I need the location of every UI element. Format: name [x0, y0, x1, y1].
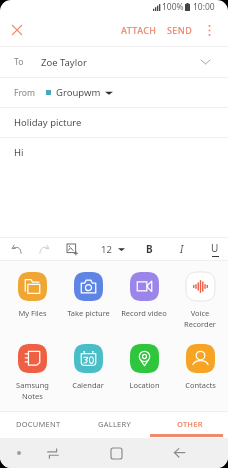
- staticText: Voice Recorder: [184, 308, 216, 329]
- staticText: Samsung Notes: [16, 380, 49, 401]
- staticText: Location: [129, 380, 160, 390]
- button[interactable]: OTHER: [152, 412, 228, 438]
- button[interactable]: Close: [6, 19, 28, 41]
- button[interactable]: Home: [85, 438, 148, 468]
- button[interactable]: More options: [198, 17, 220, 43]
- button[interactable]: To: [0, 47, 228, 77]
- button[interactable]: ATTACH: [116, 18, 162, 42]
- button[interactable]: I: [170, 239, 194, 259]
- button[interactable]: DOCUMENT: [0, 412, 76, 438]
- staticText: Hi: [14, 146, 24, 159]
- staticText: My Files: [18, 308, 47, 318]
- staticText: DOCUMENT: [16, 419, 61, 429]
- button[interactable]: SEND: [162, 18, 198, 42]
- staticText: Record video: [121, 308, 167, 318]
- button[interactable]: Take picture: [60, 272, 116, 318]
- staticText: From: [14, 87, 35, 99]
- button[interactable]: Holiday picture: [0, 108, 228, 137]
- button[interactable]: Redo: [35, 240, 53, 258]
- staticText: B: [146, 242, 153, 256]
- button[interactable]: My Files: [5, 272, 60, 318]
- button[interactable]: Insert image: [63, 240, 81, 258]
- staticText: I: [180, 242, 184, 256]
- button[interactable]: B: [137, 239, 161, 259]
- staticText: SEND: [167, 24, 193, 36]
- button[interactable]: U: [203, 239, 227, 259]
- staticText: 100%: [162, 1, 184, 13]
- staticText: To: [14, 56, 24, 68]
- button[interactable]: Record video: [116, 272, 172, 318]
- staticText: GALLERY: [98, 419, 131, 429]
- staticText: U: [211, 241, 219, 255]
- staticText: 12: [101, 243, 112, 256]
- staticText: Holiday picture: [14, 116, 82, 129]
- staticText: 10:00: [193, 1, 215, 13]
- button[interactable]: Hi: [0, 138, 228, 167]
- button[interactable]: Contacts: [172, 344, 228, 390]
- staticText: Contacts: [185, 380, 216, 390]
- staticText: Groupwm: [56, 86, 101, 99]
- staticText: Take picture: [67, 308, 110, 318]
- button[interactable]: Calendar: [60, 344, 116, 390]
- button[interactable]: Samsung Notes: [5, 344, 60, 401]
- button[interactable]: GALLERY: [76, 412, 152, 438]
- button[interactable]: From: [0, 78, 228, 107]
- staticText: Calendar: [72, 380, 104, 390]
- button[interactable]: Location: [116, 344, 172, 390]
- button[interactable]: Voice Recorder: [172, 272, 228, 329]
- staticText: ATTACH: [121, 24, 157, 36]
- button[interactable]: Recents: [21, 438, 85, 468]
- button[interactable]: 12: [97, 239, 129, 260]
- button[interactable]: Undo: [7, 240, 25, 258]
- staticText: Zoe Taylor: [41, 56, 87, 69]
- staticText: OTHER: [177, 419, 203, 429]
- button[interactable]: Back: [148, 438, 211, 468]
